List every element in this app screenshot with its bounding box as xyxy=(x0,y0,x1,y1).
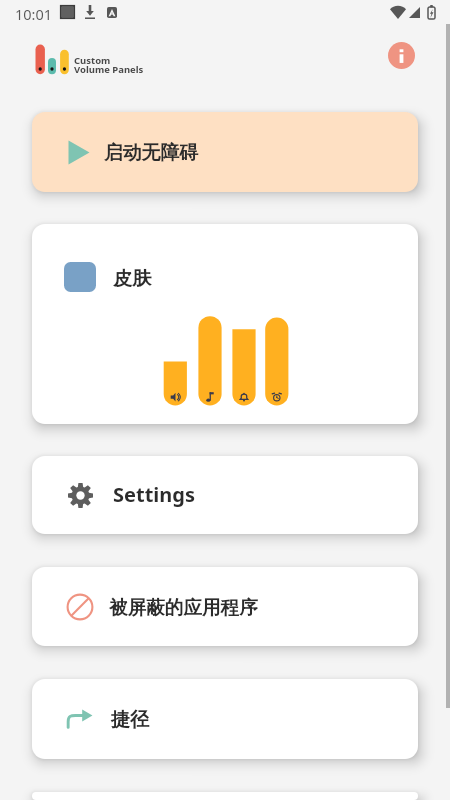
staticText: Settings xyxy=(113,481,195,508)
button[interactable]: 捷径 xyxy=(32,679,418,759)
button[interactable]: Settings xyxy=(32,456,418,534)
button[interactable]: Info xyxy=(388,42,415,69)
staticText: 皮肤 xyxy=(113,267,151,291)
staticText: Custom xyxy=(74,54,111,67)
staticText: 捷径 xyxy=(111,708,149,732)
staticText: 启动无障碍 xyxy=(104,141,198,165)
button[interactable]: 启动无障碍 xyxy=(32,112,418,192)
button[interactable]: 被屏蔽的应用程序 xyxy=(32,567,418,646)
staticText: 10:01 xyxy=(15,4,53,24)
staticText: 被屏蔽的应用程序 xyxy=(109,596,258,619)
button[interactable]: 皮肤 xyxy=(32,224,418,424)
staticText: Volume Panels xyxy=(74,63,144,76)
